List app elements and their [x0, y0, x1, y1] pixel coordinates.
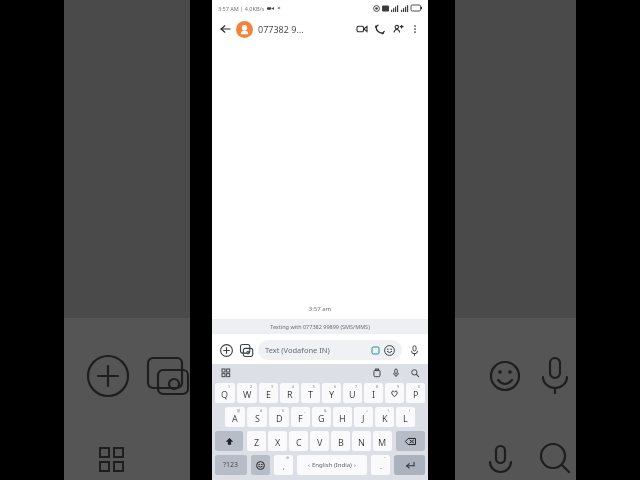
button[interactable]: $: [269, 407, 289, 427]
staticText: Y: [329, 388, 335, 400]
staticText: 3:57 AM | 4.0KB/s: [218, 5, 265, 12]
staticText: ,: [283, 462, 285, 472]
staticText: U: [349, 388, 356, 400]
button[interactable]: ": [371, 455, 390, 475]
staticText: X: [275, 436, 281, 448]
staticText: 4: [292, 384, 295, 389]
staticText: R: [287, 388, 293, 400]
button[interactable]: M: [373, 431, 392, 451]
staticText: $: [282, 408, 285, 413]
staticText: ): [409, 408, 411, 413]
staticText: .: [380, 462, 382, 472]
button[interactable]: B: [331, 431, 350, 451]
button[interactable]: 9: [385, 383, 404, 403]
button[interactable]: Emoji keyboard: [251, 455, 270, 475]
button[interactable]: Call: [371, 20, 389, 38]
staticText: _: [304, 408, 306, 413]
button[interactable]: Contact avatar: [236, 21, 253, 38]
button[interactable]: &: [312, 407, 331, 427]
button[interactable]: ‹: [297, 455, 367, 475]
staticText: 6: [334, 384, 337, 389]
staticText: N: [358, 436, 365, 448]
staticText: ?123: [223, 460, 239, 470]
staticText: D: [276, 412, 283, 424]
staticText: ›: [354, 461, 356, 469]
staticText: 3:57 am: [212, 305, 428, 313]
button[interactable]: Clipboard: [370, 366, 383, 379]
staticText: Texting with 077382 99899 (SMS/MMS): [212, 323, 428, 330]
staticText: T: [308, 388, 314, 400]
staticText: 9: [397, 384, 400, 389]
button[interactable]: Gallery: [237, 341, 255, 359]
staticText: 7: [355, 384, 358, 389]
button[interactable]: 8: [364, 383, 383, 403]
button[interactable]: Text (Vodafone IN): [258, 340, 402, 360]
staticText: Z: [254, 436, 260, 448]
button[interactable]: 6: [322, 383, 341, 403]
staticText: 0: [418, 384, 421, 389]
button[interactable]: Add person: [389, 20, 407, 38]
button[interactable]: -: [333, 407, 352, 427]
button[interactable]: Shift: [215, 431, 243, 451]
staticText: S: [255, 412, 260, 424]
button[interactable]: @: [225, 407, 245, 427]
button[interactable]: X: [268, 431, 287, 451]
staticText: +: [366, 408, 369, 413]
button[interactable]: Video call: [353, 20, 371, 38]
button[interactable]: ): [396, 407, 415, 427]
staticText: &: [324, 408, 327, 413]
staticText: M: [378, 436, 387, 448]
button[interactable]: (: [375, 407, 394, 427]
button[interactable]: 7: [343, 383, 362, 403]
staticText: Q: [221, 388, 229, 400]
staticText: H: [339, 412, 346, 424]
staticText: Text (Vodafone IN): [265, 345, 372, 355]
button[interactable]: Voice message: [405, 341, 423, 359]
staticText: English (India): [312, 461, 352, 469]
button[interactable]: 3: [259, 383, 278, 403]
staticText: ⚙: [286, 456, 290, 460]
button[interactable]: ⚙: [274, 455, 293, 475]
button[interactable]: 077382 9…: [258, 23, 353, 35]
staticText: B: [338, 436, 344, 448]
staticText: I: [372, 388, 376, 400]
button[interactable]: Emoji: [384, 345, 395, 356]
staticText: E: [266, 388, 272, 400]
button[interactable]: Search: [408, 366, 421, 379]
button[interactable]: Enter: [394, 455, 425, 475]
button[interactable]: Backspace: [396, 431, 425, 451]
staticText: W: [243, 388, 252, 400]
staticText: A: [232, 412, 238, 424]
button[interactable]: 0: [406, 383, 425, 403]
staticText: V: [317, 436, 323, 448]
button[interactable]: 2: [237, 383, 257, 403]
button[interactable]: #: [247, 407, 267, 427]
button[interactable]: N: [352, 431, 371, 451]
staticText: 8: [376, 384, 379, 389]
button[interactable]: +: [354, 407, 373, 427]
staticText: K: [382, 412, 388, 424]
button[interactable]: More options: [407, 21, 423, 37]
button[interactable]: _: [291, 407, 310, 427]
staticText: L: [403, 412, 408, 424]
button[interactable]: Symbols: [215, 455, 247, 475]
button[interactable]: Z: [247, 431, 266, 451]
button[interactable]: 5: [301, 383, 320, 403]
staticText: @: [237, 408, 241, 413]
staticText: G: [318, 412, 325, 424]
button[interactable]: 1: [215, 383, 235, 403]
staticText: P: [413, 388, 419, 400]
button[interactable]: C: [289, 431, 308, 451]
staticText: C: [296, 436, 302, 448]
button[interactable]: Add attachment: [217, 341, 235, 359]
staticText: -: [346, 408, 348, 413]
button[interactable]: Keyboard menu: [219, 366, 232, 379]
staticText: (: [388, 408, 390, 413]
button[interactable]: Back: [217, 21, 233, 37]
button[interactable]: V: [310, 431, 329, 451]
button[interactable]: 4: [280, 383, 299, 403]
staticText: 1: [228, 384, 231, 389]
staticText: 5: [313, 384, 316, 389]
staticText: #: [260, 408, 263, 413]
button[interactable]: Voice input: [389, 366, 402, 379]
